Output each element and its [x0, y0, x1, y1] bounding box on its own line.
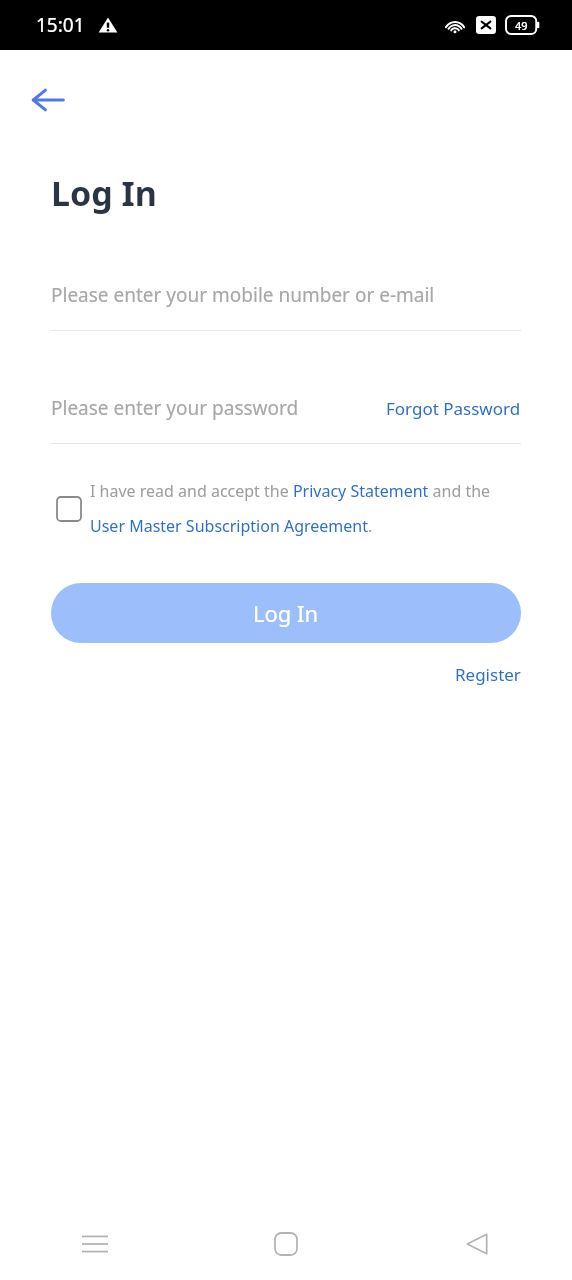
staticText: I have read and accept the Privacy State…: [90, 480, 522, 537]
staticText: Please enter your mobile number or e-mai…: [51, 282, 435, 308]
staticText: Log In: [253, 598, 319, 628]
button[interactable]: Recent apps: [0, 1208, 190, 1280]
other: Accept terms checkbox: [56, 496, 82, 522]
staticText: Forgot Password: [386, 397, 521, 420]
staticText: 49: [515, 18, 528, 33]
button[interactable]: Log In: [51, 583, 521, 643]
staticText: Register: [455, 663, 521, 686]
button[interactable]: Back: [381, 1208, 572, 1280]
staticText: Please enter your password: [51, 395, 299, 421]
staticText: Log In: [51, 170, 157, 216]
staticText: 15:01: [36, 12, 85, 38]
button[interactable]: Forgot Password: [386, 397, 521, 420]
button[interactable]: Back: [22, 74, 74, 126]
button[interactable]: Register: [455, 655, 521, 694]
button[interactable]: Home: [190, 1208, 381, 1280]
button[interactable]: Accept terms checkbox: [56, 480, 522, 537]
button[interactable]: Please enter your password: [51, 395, 386, 421]
button[interactable]: Please enter your mobile number or e-mai…: [51, 278, 521, 312]
